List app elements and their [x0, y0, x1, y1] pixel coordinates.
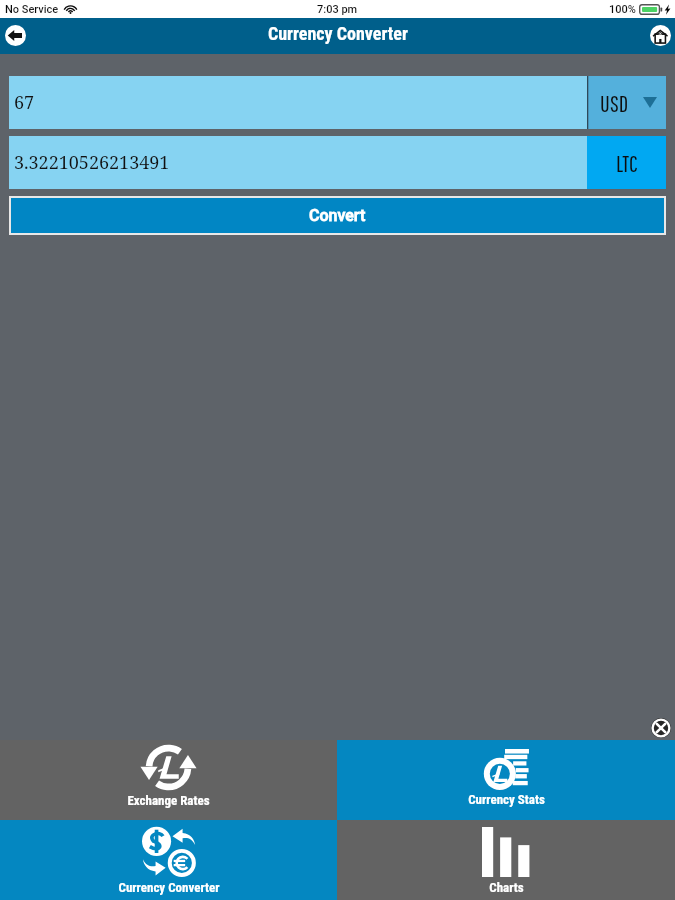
button[interactable]: Home: [646, 21, 674, 49]
staticText: No Service: [5, 3, 59, 16]
button[interactable]: Currency Converter: [0, 820, 337, 900]
button[interactable]: Close: [651, 718, 671, 738]
button[interactable]: 67: [9, 76, 587, 129]
staticText: 100%: [609, 3, 636, 16]
staticText: LTC: [616, 150, 638, 176]
button[interactable]: 3.32210526213491: [9, 136, 587, 189]
staticText: 7:03 pm: [317, 3, 358, 16]
staticText: Currency Stats: [468, 792, 545, 807]
staticText: Exchange Rates: [127, 793, 210, 808]
staticText: Charts: [489, 880, 524, 895]
button[interactable]: Back: [1, 21, 29, 49]
staticText: Currency Converter: [118, 880, 220, 895]
staticText: USD: [600, 90, 629, 116]
button[interactable]: LTC: [587, 136, 666, 189]
staticText: 67: [14, 90, 35, 115]
button[interactable]: Currency Stats: [337, 740, 675, 820]
button[interactable]: Exchange Rates: [0, 740, 337, 820]
button[interactable]: Convert: [9, 196, 666, 235]
staticText: 3.32210526213491: [14, 150, 170, 175]
button[interactable]: USD: [587, 76, 666, 129]
staticText: Currency Converter: [268, 23, 408, 44]
staticText: Convert: [309, 206, 366, 225]
button[interactable]: Charts: [337, 820, 675, 900]
